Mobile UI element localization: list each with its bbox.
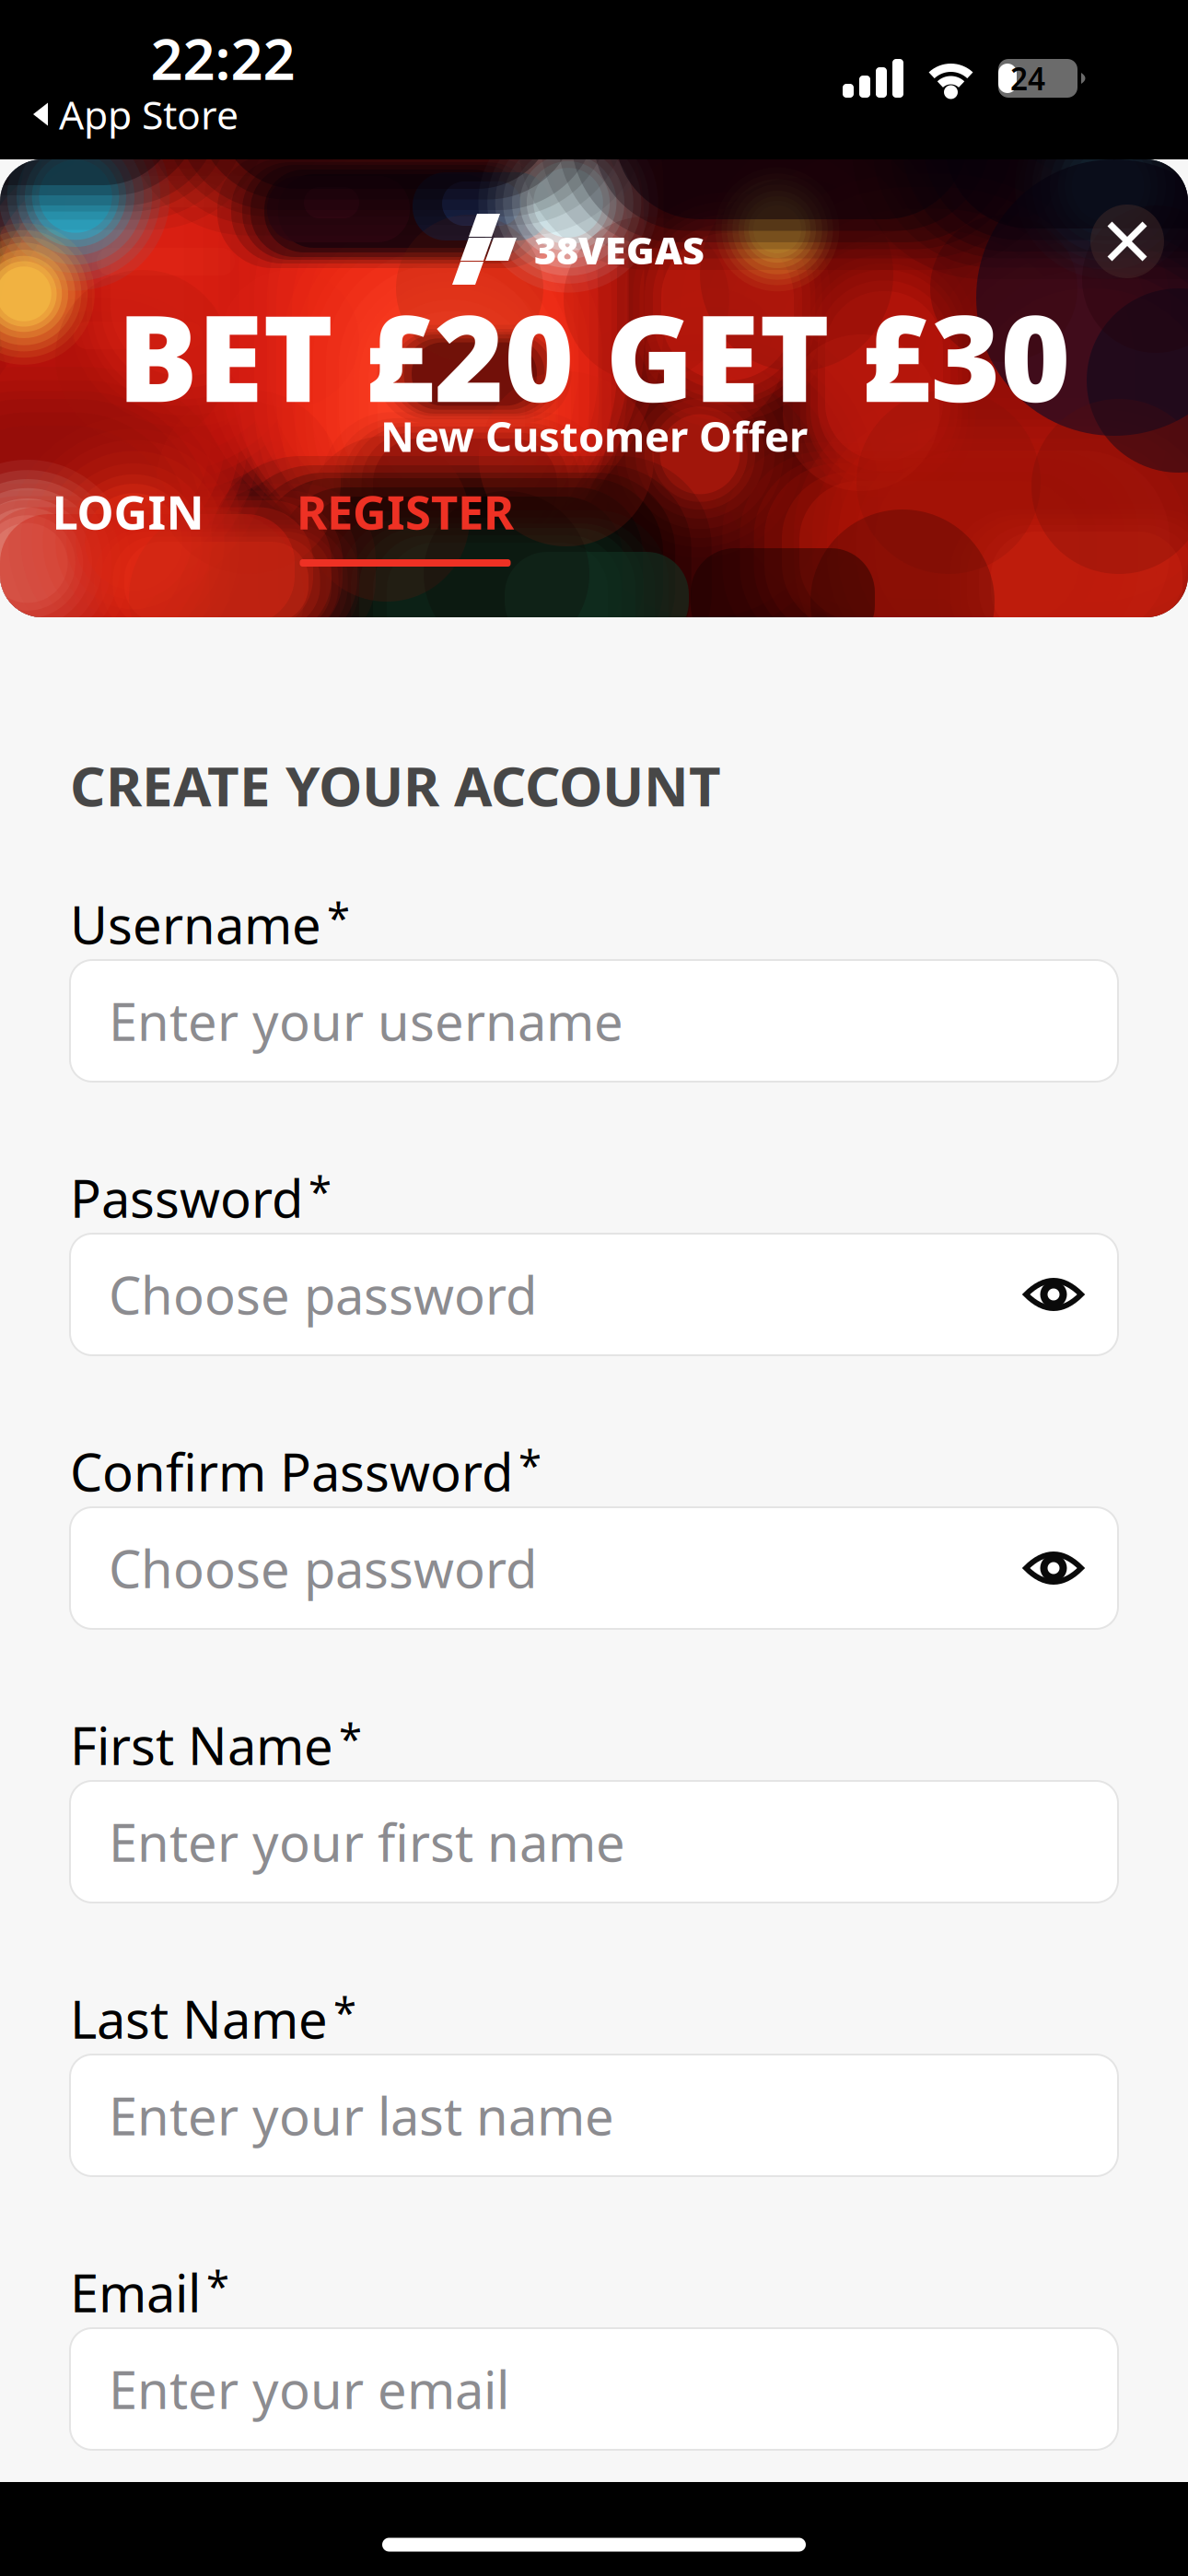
staticText: Email [70,2258,201,2327]
button[interactable]: App Store [22,88,354,140]
staticText: First Name [70,1711,333,1779]
button[interactable]: Choose password [70,1507,1118,1629]
staticText: 24 [1010,58,1045,99]
staticText: * [327,890,350,945]
button[interactable]: Enter your email [70,2328,1118,2450]
staticText: Choose password [109,1534,537,1602]
button[interactable]: Enter your last name [70,2055,1118,2176]
staticText: Last Name [70,1984,328,2053]
staticText: * [339,1711,362,1766]
staticText: LOGIN [52,480,204,542]
staticText: Enter your email [109,2355,509,2423]
button[interactable]: Show password [1009,1522,1098,1614]
button[interactable]: Close [1081,195,1173,287]
staticText: * [309,1163,332,1219]
button[interactable]: REGISTER [276,474,534,591]
staticText: Password [70,1163,303,1232]
staticText: CREATE YOUR ACCOUNT [70,748,721,822]
staticText: 22:22 [151,21,295,96]
staticText: 38VEGAS [534,224,705,275]
staticText: REGISTER [297,480,514,542]
staticText: * [518,1437,542,1493]
staticText: New Customer Offer [380,408,808,464]
staticText: Confirm Password [70,1437,513,1506]
staticText: * [206,2258,229,2313]
button[interactable]: LOGIN [31,474,225,548]
button[interactable]: Choose password [70,1234,1118,1355]
staticText: App Store [59,88,239,140]
staticText: Enter your first name [109,1807,625,1876]
staticText: Choose password [109,1260,537,1329]
staticText: BET £20 GET £30 [117,276,1071,435]
button[interactable]: Enter your first name [70,1781,1118,1903]
staticText: * [333,1984,356,2040]
staticText: Username [70,890,321,958]
button[interactable]: Enter your username [70,960,1118,1082]
button[interactable]: Show password [1009,1248,1098,1341]
staticText: Enter your last name [109,2081,614,2150]
staticText: Enter your username [109,987,623,1055]
